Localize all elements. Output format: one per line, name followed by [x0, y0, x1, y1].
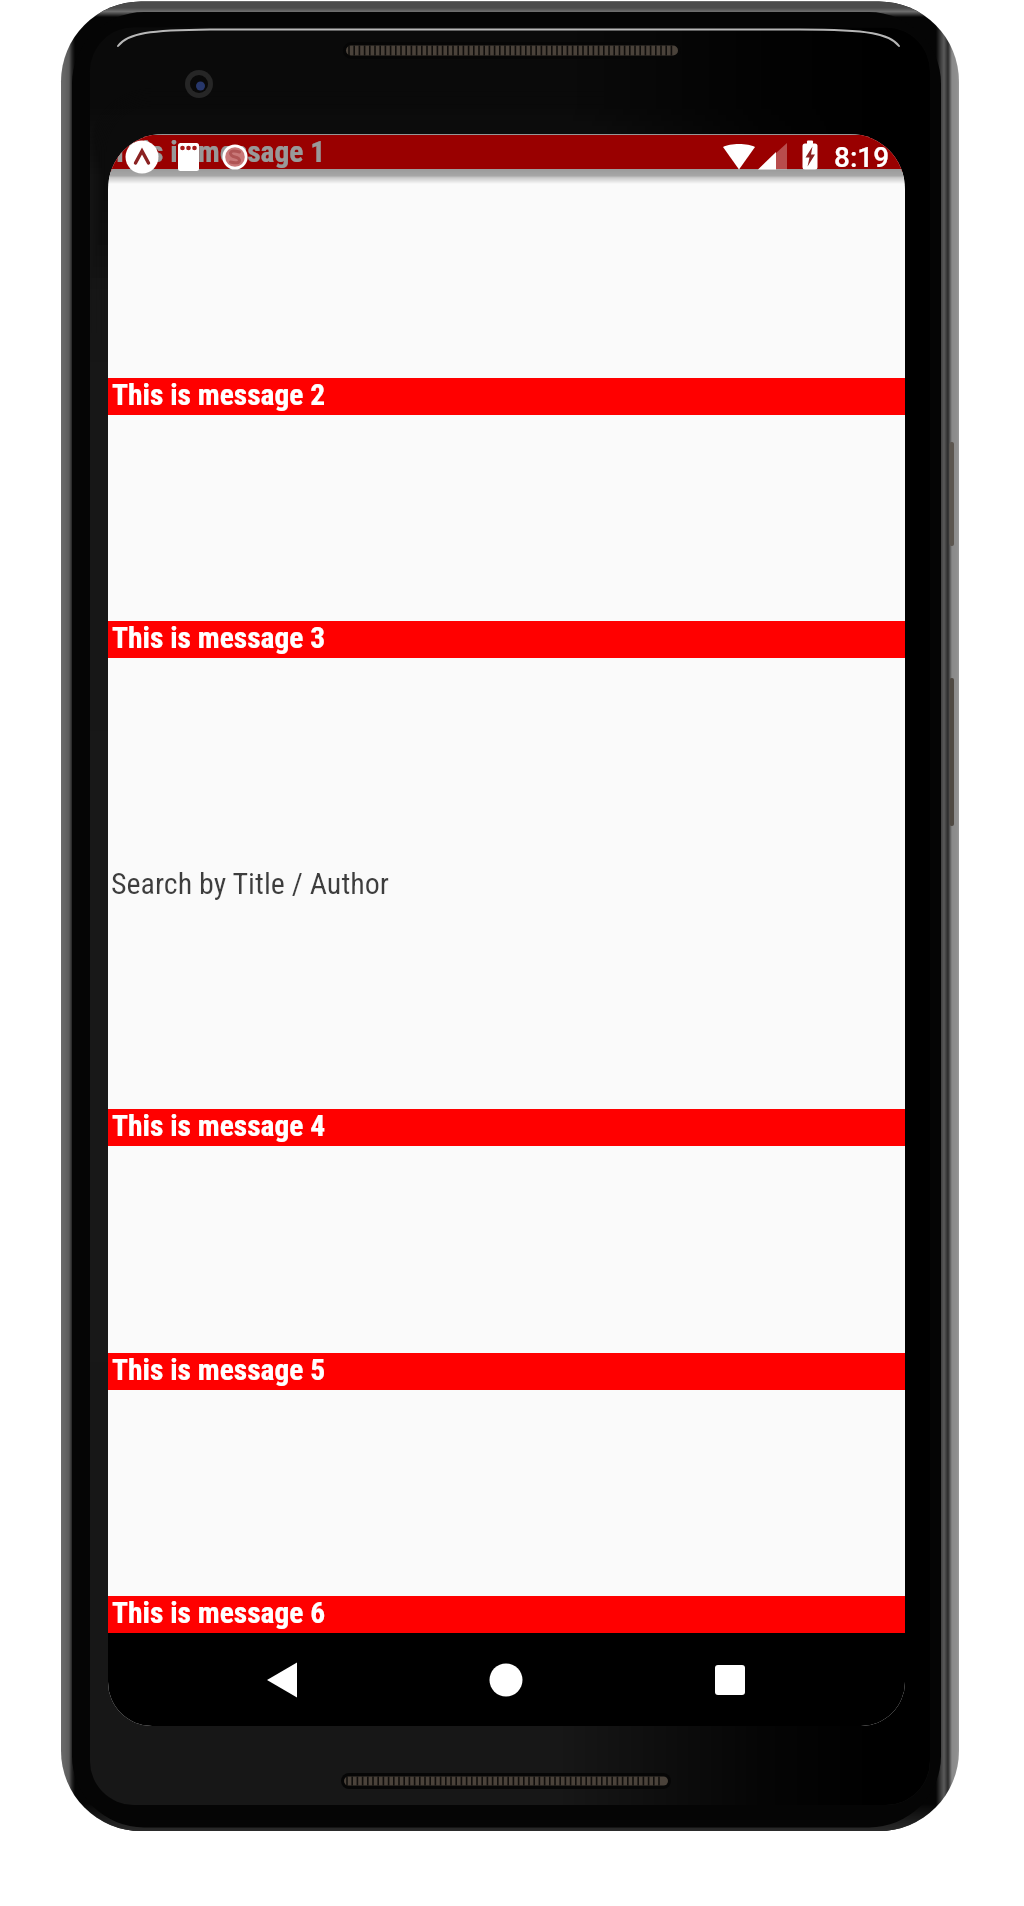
staticText: This is message 4 — [112, 1109, 326, 1144]
staticText: Search by Title / Author — [111, 866, 389, 901]
button[interactable]: This is message 6 — [108, 1596, 905, 1633]
staticText: This is message 5 — [112, 1353, 326, 1388]
button[interactable]: Back — [108, 1633, 374, 1726]
button[interactable]: This is message 2 — [108, 378, 905, 415]
button[interactable]: This is message 5 — [108, 1353, 905, 1390]
button[interactable]: This is message 4 — [108, 1109, 905, 1146]
staticText: This is message 2 — [112, 378, 326, 413]
staticText: This is message 6 — [112, 1596, 326, 1631]
staticText: 8:19 — [834, 141, 890, 174]
button[interactable]: Search by Title / Author — [108, 852, 905, 914]
button[interactable]: Recent apps — [640, 1633, 905, 1726]
button[interactable]: This is message 1 — [108, 135, 905, 172]
staticText: This is message 1 — [112, 135, 326, 170]
staticText: This is message 3 — [112, 621, 326, 656]
button[interactable]: This is message 3 — [108, 621, 905, 658]
button[interactable]: Home — [374, 1633, 640, 1726]
